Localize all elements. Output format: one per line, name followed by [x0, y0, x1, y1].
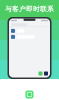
button[interactable]: App icon: [25, 90, 33, 98]
staticText: 与客户即时联系: [5, 5, 54, 13]
